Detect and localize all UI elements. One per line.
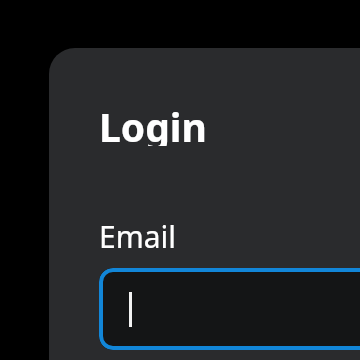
staticText: Email [99,216,177,250]
button[interactable]: Email input field [99,268,360,350]
staticText: Login [99,100,207,146]
